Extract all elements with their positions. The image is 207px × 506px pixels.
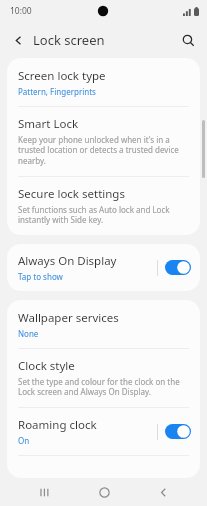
staticText: Clock style — [18, 358, 75, 374]
button[interactable]: Screen lock type — [7, 58, 200, 106]
staticText: On — [18, 435, 30, 446]
button[interactable]: Roaming clock — [7, 408, 200, 455]
button[interactable]: Back — [148, 478, 178, 506]
staticText: Lock screen — [33, 31, 105, 49]
staticText: Wallpaper services — [18, 310, 119, 326]
staticText: Keep your phone unlocked when it's in a … — [18, 134, 189, 167]
staticText: Screen lock type — [18, 68, 106, 84]
staticText: Set functions such as Auto lock and Lock… — [18, 204, 189, 226]
staticText: Always On Display — [18, 253, 117, 269]
staticText: Secure lock settings — [18, 186, 125, 202]
button[interactable]: Secure lock settings — [7, 177, 200, 235]
staticText: Smart Lock — [18, 116, 79, 132]
button[interactable]: Clock style — [7, 349, 200, 407]
staticText: 10:00 — [10, 5, 32, 17]
button[interactable]: Wallpaper services — [7, 300, 200, 348]
staticText: None — [18, 328, 39, 339]
staticText: Tap to show — [18, 271, 63, 282]
button[interactable]: Search — [174, 26, 202, 54]
button[interactable]: Home — [89, 478, 119, 506]
staticText: Roaming clock — [18, 417, 97, 433]
staticText: Set the type and colour for the clock on… — [18, 376, 189, 398]
button[interactable]: Always On Display — [7, 244, 200, 291]
staticText: Pattern, Fingerprints — [18, 86, 96, 97]
button[interactable]: Recent apps — [29, 478, 59, 506]
button[interactable]: Smart Lock — [7, 107, 200, 176]
button[interactable]: Back — [4, 26, 32, 54]
